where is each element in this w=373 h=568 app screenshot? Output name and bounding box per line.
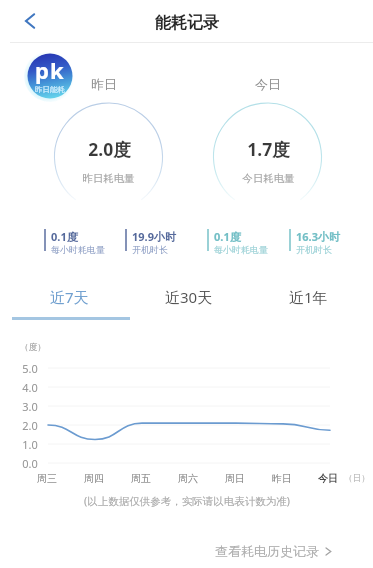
- staticText: 1.7度: [247, 137, 290, 161]
- staticText: 1.0: [22, 437, 38, 452]
- staticText: 周四: [84, 472, 104, 485]
- staticText: （度）: [20, 342, 46, 353]
- staticText: 今日耗电量: [242, 172, 295, 185]
- button[interactable]: 近7天: [10, 281, 128, 321]
- button[interactable]: 0.1度: [44, 229, 105, 255]
- staticText: (以上数据仅供参考，实际请以电表计数为准): [84, 494, 290, 508]
- staticText: 昨日: [272, 472, 292, 485]
- button[interactable]: 19.9小时: [125, 229, 176, 255]
- button[interactable]: Back: [17, 8, 43, 34]
- staticText: 周五: [131, 472, 151, 485]
- staticText: 0.1度: [214, 229, 241, 244]
- staticText: 5.0: [22, 361, 38, 376]
- staticText: 昨日: [91, 76, 117, 92]
- staticText: 3.0: [22, 399, 38, 414]
- staticText: 0.1度: [51, 229, 78, 244]
- staticText: 16.3小时: [296, 229, 340, 244]
- button[interactable]: 近1年: [249, 281, 367, 321]
- staticText: 今日: [255, 76, 281, 92]
- staticText: 近7天: [50, 287, 89, 307]
- staticText: 能耗记录: [155, 13, 219, 33]
- staticText: 开机时长: [132, 244, 168, 255]
- staticText: 周六: [178, 472, 198, 485]
- button[interactable]: 查看耗电历史记录: [215, 541, 332, 561]
- staticText: 2.0度: [88, 137, 131, 161]
- staticText: 周三: [37, 472, 57, 485]
- staticText: 昨日耗电量: [82, 172, 135, 185]
- staticText: 周日: [225, 472, 245, 485]
- staticText: 2.0: [22, 418, 38, 433]
- staticText: 开机时长: [296, 244, 332, 255]
- button[interactable]: 16.3小时: [289, 229, 340, 255]
- staticText: 0.0: [22, 456, 38, 471]
- staticText: 查看耗电历史记录: [215, 543, 319, 559]
- staticText: 近1年: [289, 287, 328, 307]
- staticText: 今日: [318, 472, 338, 485]
- staticText: 近30天: [165, 287, 213, 307]
- staticText: 19.9小时: [132, 229, 176, 244]
- staticText: 4.0: [22, 380, 38, 395]
- staticText: 昨日能耗: [35, 85, 65, 94]
- staticText: 每小时耗电量: [214, 244, 268, 255]
- button[interactable]: 0.1度: [207, 229, 268, 255]
- staticText: 每小时耗电量: [51, 244, 105, 255]
- staticText: （日）: [344, 473, 370, 484]
- staticText: pk: [35, 55, 65, 85]
- button[interactable]: 近30天: [130, 281, 248, 321]
